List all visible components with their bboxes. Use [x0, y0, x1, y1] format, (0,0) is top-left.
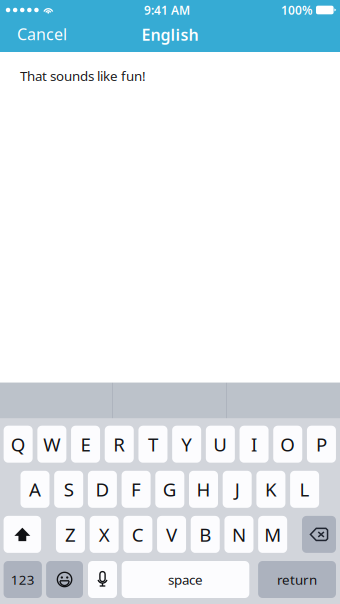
staticText: 100%: [281, 2, 313, 18]
button[interactable]: S: [54, 471, 83, 508]
button[interactable]: space: [122, 561, 249, 598]
button[interactable]: A: [20, 471, 49, 508]
staticText: W: [43, 432, 60, 457]
staticText: 9:41 AM: [144, 2, 190, 18]
staticText: B: [199, 522, 211, 547]
staticText: Z: [65, 522, 76, 547]
button[interactable]: Delete: [302, 516, 336, 553]
staticText: U: [213, 432, 227, 457]
staticText: space: [168, 571, 203, 588]
button[interactable]: F: [122, 471, 151, 508]
staticText: R: [113, 432, 125, 457]
staticText: F: [131, 477, 141, 502]
button[interactable]: Cancel: [0, 19, 77, 53]
button[interactable]: D: [88, 471, 117, 508]
staticText: P: [316, 432, 327, 457]
staticText: Cancel: [17, 23, 67, 45]
staticText: E: [80, 432, 90, 457]
staticText: A: [29, 477, 41, 502]
button[interactable]: H: [189, 471, 218, 508]
button[interactable]: X: [90, 516, 119, 553]
button[interactable]: Emoji: [46, 561, 83, 598]
button[interactable]: K: [256, 471, 285, 508]
staticText: V: [166, 522, 177, 547]
staticText: O: [280, 432, 295, 457]
staticText: D: [95, 477, 109, 502]
button[interactable]: return: [258, 561, 336, 598]
staticText: 123: [11, 571, 35, 588]
button[interactable]: Shift: [4, 516, 41, 553]
staticText: X: [99, 522, 110, 547]
button[interactable]: N: [224, 516, 253, 553]
button[interactable]: U: [206, 426, 235, 463]
button[interactable]: G: [155, 471, 184, 508]
staticText: K: [265, 477, 277, 502]
staticText: T: [148, 432, 158, 457]
button[interactable]: L: [290, 471, 319, 508]
button[interactable]: Z: [56, 516, 85, 553]
staticText: G: [163, 477, 177, 502]
staticText: Y: [181, 432, 192, 457]
button[interactable]: O: [273, 426, 302, 463]
button[interactable]: Q: [4, 426, 33, 463]
button[interactable]: R: [105, 426, 134, 463]
staticText: I: [251, 432, 257, 457]
button[interactable]: W: [37, 426, 66, 463]
button[interactable]: T: [138, 426, 167, 463]
button[interactable]: C: [123, 516, 152, 553]
button[interactable]: 123: [4, 561, 42, 598]
staticText: N: [232, 522, 246, 547]
staticText: M: [264, 522, 281, 547]
staticText: Q: [11, 432, 26, 457]
staticText: S: [64, 477, 74, 502]
staticText: C: [132, 522, 144, 547]
button[interactable]: Dictation: [88, 561, 117, 598]
button[interactable]: J: [223, 471, 252, 508]
button[interactable]: V: [157, 516, 186, 553]
staticText: J: [235, 477, 240, 502]
button[interactable]: I: [239, 426, 268, 463]
staticText: L: [300, 477, 310, 502]
staticText: return: [277, 571, 317, 588]
button[interactable]: M: [258, 516, 287, 553]
staticText: H: [196, 477, 210, 502]
staticText: That sounds like fun!: [20, 67, 146, 85]
staticText: English: [141, 24, 198, 45]
button[interactable]: B: [191, 516, 220, 553]
button[interactable]: P: [307, 426, 336, 463]
button[interactable]: Y: [172, 426, 201, 463]
button[interactable]: E: [71, 426, 100, 463]
